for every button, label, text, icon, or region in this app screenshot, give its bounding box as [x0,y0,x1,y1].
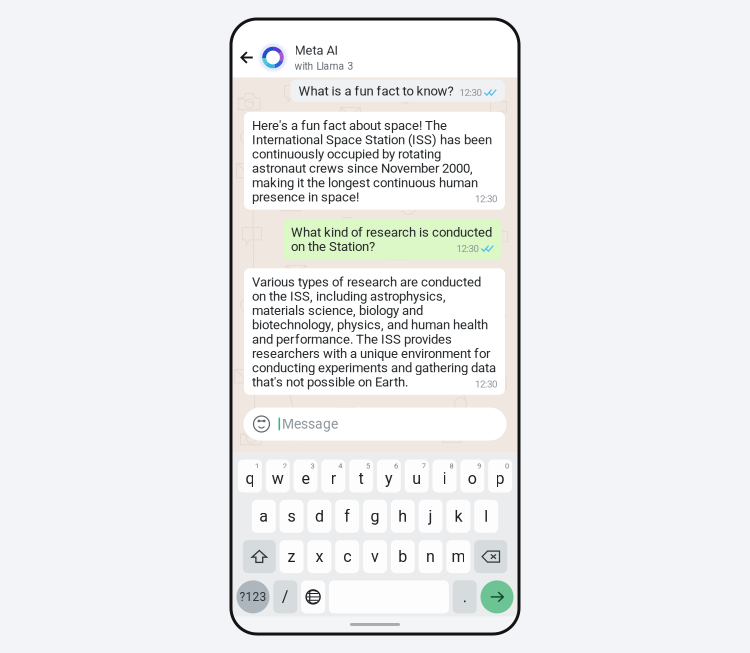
staticText: d [315,507,324,526]
button[interactable]: k [446,500,470,533]
staticText: h [398,507,407,526]
staticText: o [468,469,477,488]
staticText: b [398,547,407,566]
staticText: l [484,507,488,526]
staticText: 12:30 [475,193,497,205]
button[interactable]: z [280,540,304,573]
staticText: Message [282,416,338,432]
staticText: with Llama 3 [294,60,353,72]
staticText: c [343,547,351,566]
button[interactable]: j [419,500,443,533]
staticText: e [301,469,309,488]
staticText: x [315,547,323,566]
staticText: Various types of research are conducted … [252,274,496,390]
staticText: n [426,547,435,566]
button[interactable]: v [363,540,387,573]
button[interactable]: b [391,540,415,573]
button[interactable]: 4 [321,459,345,492]
staticText: 12:30 [475,378,497,390]
button[interactable]: 2 [266,459,290,492]
button[interactable]: 8 [432,459,456,492]
button[interactable]: 9 [460,459,484,492]
staticText: 0 [505,461,509,470]
button[interactable]: Symbols [236,580,269,613]
button[interactable]: . [453,580,477,613]
staticText: 12:30 [459,87,481,98]
button[interactable]: x [307,540,331,573]
staticText: j [429,507,433,526]
staticText: u [412,469,421,488]
staticText: v [371,547,379,566]
button[interactable]: d [307,500,331,533]
staticText: What is a fun fact to know? [298,83,453,99]
button[interactable]: l [474,500,498,533]
button[interactable]: 6 [377,459,401,492]
button[interactable]: f [335,500,359,533]
staticText: 7 [422,461,426,470]
staticText: k [454,507,462,526]
staticText: Here's a fun fact about space! The Inter… [252,118,492,205]
button[interactable]: Switch keyboard [301,580,325,613]
staticText: y [385,469,393,488]
staticText: / [282,587,289,606]
staticText: p [496,469,505,488]
staticText: 1 [255,461,259,470]
staticText: ?123 [239,590,266,604]
staticText: . [463,587,467,606]
staticText: m [451,547,465,566]
staticText: 3 [310,461,314,470]
button[interactable]: 0 [488,459,512,492]
staticText: q [245,469,254,488]
staticText: 4 [338,461,342,470]
staticText: Meta AI [294,43,337,58]
staticText: a [259,507,268,526]
staticText: w [272,469,284,488]
button[interactable]: 7 [405,459,429,492]
button[interactable]: 5 [349,459,373,492]
button[interactable]: n [419,540,443,573]
button[interactable]: / [273,580,297,613]
button[interactable]: 3 [293,459,317,492]
staticText: 5 [366,461,370,470]
staticText: 9 [477,461,481,470]
staticText: 2 [283,461,287,470]
button[interactable]: s [280,500,304,533]
staticText: t [359,469,364,488]
button[interactable]: Emoji [243,415,270,433]
button[interactable]: Shift [243,540,276,573]
staticText: f [344,507,350,526]
staticText: 6 [394,461,398,470]
button[interactable]: Send [480,580,513,613]
staticText: What kind of research is conducted on th… [291,225,492,254]
button[interactable]: Back [237,42,256,72]
staticText: 12:30 [456,243,478,254]
staticText: g [370,507,379,526]
staticText: s [288,507,296,526]
staticText: i [442,469,446,488]
staticText: r [331,469,336,488]
button[interactable]: h [391,500,415,533]
button[interactable]: m [446,540,470,573]
button[interactable]: a [252,500,276,533]
button[interactable]: g [363,500,387,533]
staticText: 8 [449,461,453,470]
button[interactable]: c [335,540,359,573]
staticText: z [288,547,296,566]
button[interactable]: 1 [238,459,262,492]
button[interactable]: Backspace [474,540,507,573]
